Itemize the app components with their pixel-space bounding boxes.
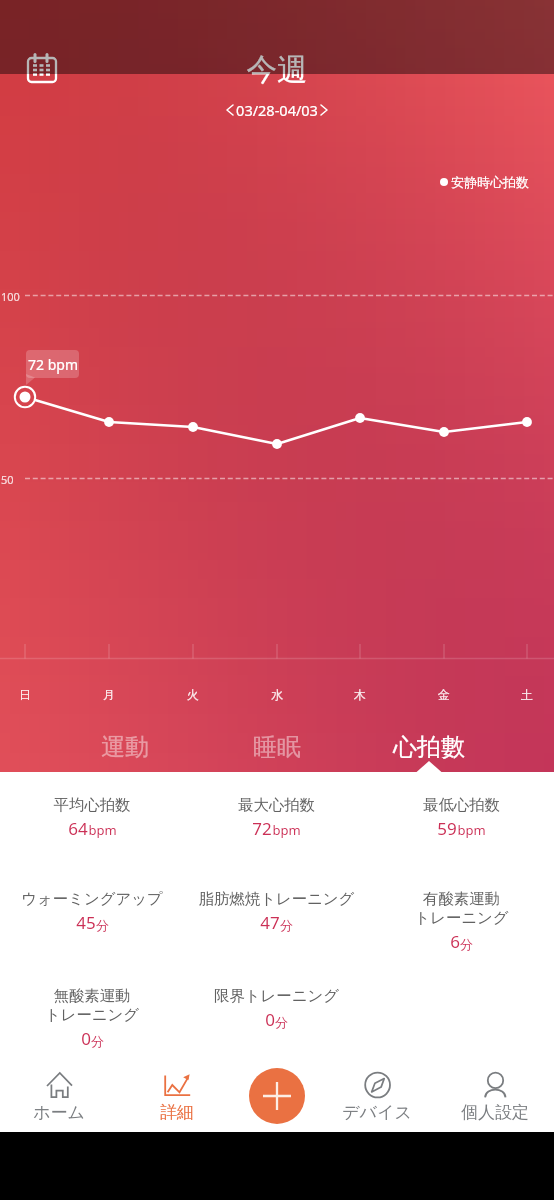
other: Previous week [222, 103, 236, 117]
staticText: 安静時心拍数 [451, 174, 529, 190]
button[interactable]: 脂肪燃焼トレーニング [184, 889, 369, 934]
staticText: bpm [457, 821, 486, 839]
staticText: 0 [265, 1008, 275, 1031]
button[interactable]: 最大心拍数 [184, 795, 369, 840]
staticText: 個人設定 [461, 1102, 529, 1123]
staticText: 月 [103, 687, 115, 702]
button[interactable]: 限界トレーニング [184, 986, 369, 1031]
staticText: 土 [521, 687, 533, 702]
staticText: 分 [280, 917, 293, 933]
staticText: 脂肪燃焼トレーニング [188, 889, 365, 908]
staticText: 分 [96, 917, 109, 933]
button[interactable]: ホーム [0, 1055, 118, 1132]
staticText: 59 [437, 817, 457, 840]
button[interactable]: Calendar [20, 46, 64, 90]
staticText: 金 [438, 687, 450, 702]
staticText: 今週 [0, 51, 554, 89]
button[interactable]: ウォーミングアップ [0, 889, 184, 934]
staticText: 64 [68, 817, 88, 840]
staticText: 有酸素運動 トレーニング [373, 889, 550, 927]
button[interactable]: 詳細 [118, 1055, 236, 1132]
staticText: 最低心拍数 [373, 795, 550, 814]
staticText: 6 [450, 930, 460, 953]
button[interactable]: 無酸素運動 トレーニング [0, 986, 184, 1050]
staticText: bpm [272, 821, 301, 839]
staticText: 100 [1, 289, 20, 304]
other: Next week [318, 103, 332, 117]
staticText: 45 [76, 911, 96, 934]
button[interactable]: デバイス [318, 1055, 436, 1132]
staticText: 分 [91, 1033, 104, 1049]
button[interactable]: 運動 [49, 718, 201, 766]
staticText: 水 [271, 687, 283, 702]
staticText: ウォーミングアップ [4, 889, 180, 908]
staticText: 運動 [101, 732, 149, 762]
button[interactable]: 最低心拍数 [369, 795, 554, 840]
staticText: 0 [81, 1027, 91, 1050]
staticText: 限界トレーニング [188, 986, 365, 1005]
staticText: 分 [275, 1014, 288, 1030]
staticText: 睡眠 [253, 732, 301, 762]
staticText: bpm [88, 821, 117, 839]
button[interactable]: 睡眠 [201, 718, 353, 766]
staticText: 無酸素運動 トレーニング [4, 986, 180, 1024]
button[interactable]: 個人設定 [436, 1055, 554, 1132]
button[interactable]: 心拍數 [353, 718, 505, 766]
staticText: 72 [252, 817, 272, 840]
button[interactable]: Previous week [222, 100, 332, 120]
staticText: 最大心拍数 [188, 795, 365, 814]
button[interactable]: 有酸素運動 トレーニング [369, 889, 554, 953]
staticText: 木 [354, 687, 366, 702]
staticText: 詳細 [160, 1102, 194, 1123]
button[interactable]: 平均心拍数 [0, 795, 184, 840]
staticText: デバイス [342, 1102, 412, 1123]
staticText: 火 [187, 687, 199, 702]
staticText: 03/28-04/03 [236, 100, 318, 120]
staticText: 平均心拍数 [4, 795, 180, 814]
staticText: 47 [260, 911, 280, 934]
staticText: 72 bpm [28, 355, 78, 374]
staticText: 50 [1, 472, 14, 487]
staticText: 心拍數 [393, 732, 465, 762]
staticText: 日 [19, 687, 31, 702]
staticText: 分 [460, 936, 473, 952]
button[interactable]: Add [249, 1068, 305, 1124]
staticText: ホーム [33, 1102, 85, 1123]
